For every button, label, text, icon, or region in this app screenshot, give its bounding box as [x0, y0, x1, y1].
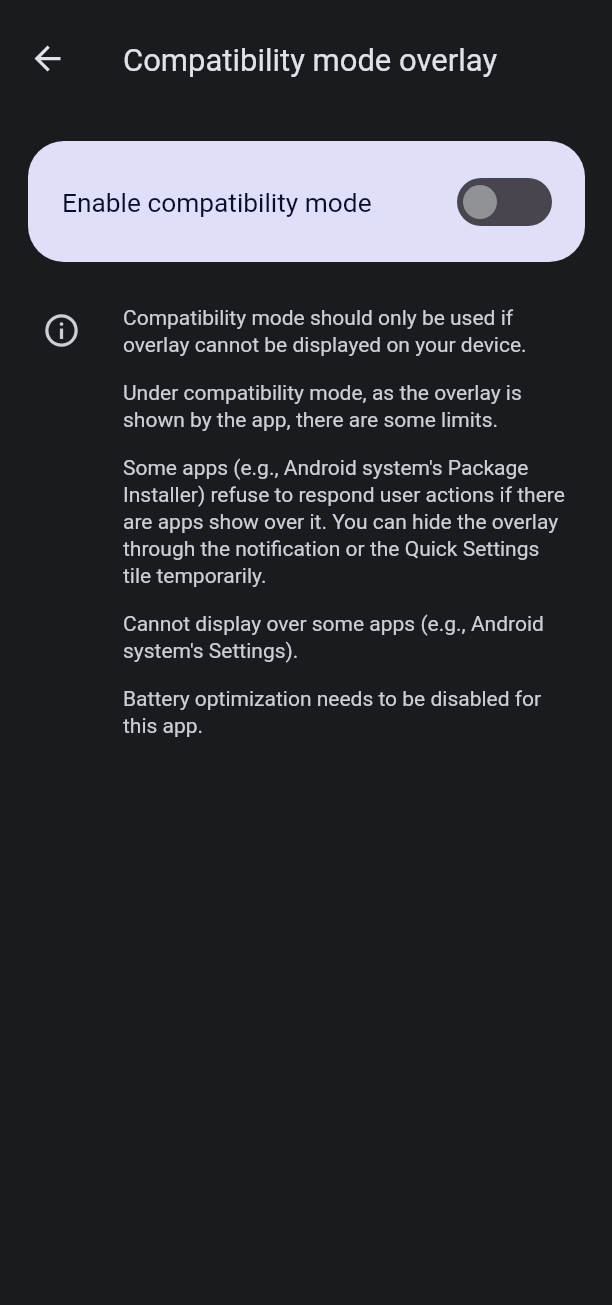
button[interactable]: Enable compatibility mode switch [457, 178, 552, 226]
staticText: Some apps (e.g., Android system's Packag… [123, 454, 565, 589]
staticText: Enable compatibility mode [62, 188, 372, 219]
staticText: Under compatibility mode, as the overlay… [123, 379, 522, 433]
staticText: Compatibility mode overlay [123, 42, 498, 78]
button[interactable]: Enable compatibility mode [28, 141, 585, 262]
button[interactable]: Back [23, 34, 71, 82]
staticText: Cannot display over some apps (e.g., And… [123, 610, 544, 664]
staticText: Compatibility mode should only be used i… [123, 304, 527, 358]
staticText: Battery optimization needs to be disable… [123, 685, 542, 739]
